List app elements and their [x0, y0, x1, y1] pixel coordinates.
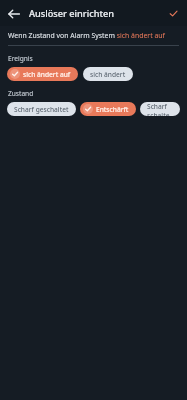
button[interactable]: sich ändert auf: [7, 67, 78, 81]
button[interactable]: Speichern: [165, 5, 182, 22]
button[interactable]: sich ändert: [83, 67, 133, 81]
staticText: Scharf geschaltet: [14, 105, 69, 114]
staticText: Auslöser einrichten: [29, 7, 115, 20]
staticText: sich ändert: [90, 70, 126, 79]
button[interactable]: Zurück: [5, 5, 22, 22]
button[interactable]: Scharf schalten: [140, 102, 180, 116]
staticText: Wenn Zustand von Alarm System sich änder…: [8, 31, 179, 40]
button[interactable]: Scharf geschaltet: [7, 102, 76, 116]
staticText: sich ändert auf: [23, 70, 71, 79]
staticText: Zustand: [8, 89, 34, 98]
staticText: Scharf schalten: [147, 102, 173, 116]
staticText: Entschärft: [96, 105, 129, 114]
staticText: Ereignis: [8, 54, 33, 63]
button[interactable]: Entschärft: [80, 102, 136, 116]
